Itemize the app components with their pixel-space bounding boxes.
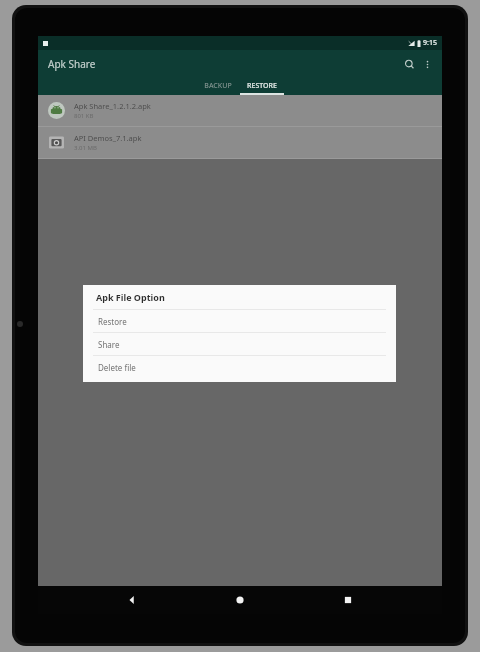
button[interactable]: Search <box>400 55 418 73</box>
staticText: Delete file <box>98 362 136 373</box>
button[interactable]: More options <box>418 55 436 73</box>
button[interactable]: Delete file <box>83 356 396 378</box>
staticText: API Demos_7.1.apk <box>74 133 142 143</box>
staticText: Apk File Option <box>96 291 165 303</box>
staticText: BACKUP <box>204 81 232 91</box>
button[interactable]: Apk Share_1.2.1.2.apk <box>38 95 442 127</box>
staticText: Apk Share_1.2.1.2.apk <box>74 101 151 111</box>
button[interactable]: Restore <box>83 310 396 333</box>
button[interactable]: Share <box>83 333 396 356</box>
staticText: Apk Share <box>48 57 96 71</box>
button[interactable]: API Demos_7.1.apk <box>38 127 442 159</box>
staticText: RESTORE <box>247 81 277 91</box>
staticText: Restore <box>98 316 127 327</box>
button[interactable]: BACKUP <box>196 77 240 95</box>
button[interactable]: Back <box>118 586 146 614</box>
button[interactable]: Home <box>226 586 254 614</box>
staticText: 3.01 MB <box>74 144 97 152</box>
staticText: Share <box>98 339 120 350</box>
staticText: 801 KB <box>74 112 94 120</box>
button[interactable]: RESTORE <box>240 77 284 95</box>
button[interactable]: Recent apps <box>334 586 362 614</box>
staticText: 9:15 <box>423 38 437 48</box>
